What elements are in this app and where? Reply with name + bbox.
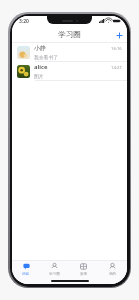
- button[interactable]: 我的: [98, 261, 127, 278]
- staticText: 我的: [109, 272, 117, 277]
- button[interactable]: 小静: [12, 43, 127, 61]
- staticText: 3:20: [19, 18, 29, 25]
- staticText: alice: [34, 63, 48, 71]
- staticText: 图片: [34, 73, 44, 79]
- staticText: 发现: [80, 272, 88, 277]
- staticText: 16:16: [111, 46, 122, 52]
- button[interactable]: alice: [12, 62, 127, 80]
- button[interactable]: 学习圈: [40, 261, 69, 278]
- staticText: 学习圈: [58, 30, 81, 39]
- button[interactable]: 发现: [69, 261, 98, 278]
- button[interactable]: 消息: [12, 261, 40, 278]
- staticText: 我去看书了: [34, 54, 58, 60]
- staticText: 学习圈: [49, 272, 60, 277]
- button[interactable]: Add: [111, 27, 127, 43]
- staticText: 小静: [34, 44, 46, 52]
- staticText: 14:27: [111, 65, 122, 71]
- staticText: 消息: [22, 272, 30, 277]
